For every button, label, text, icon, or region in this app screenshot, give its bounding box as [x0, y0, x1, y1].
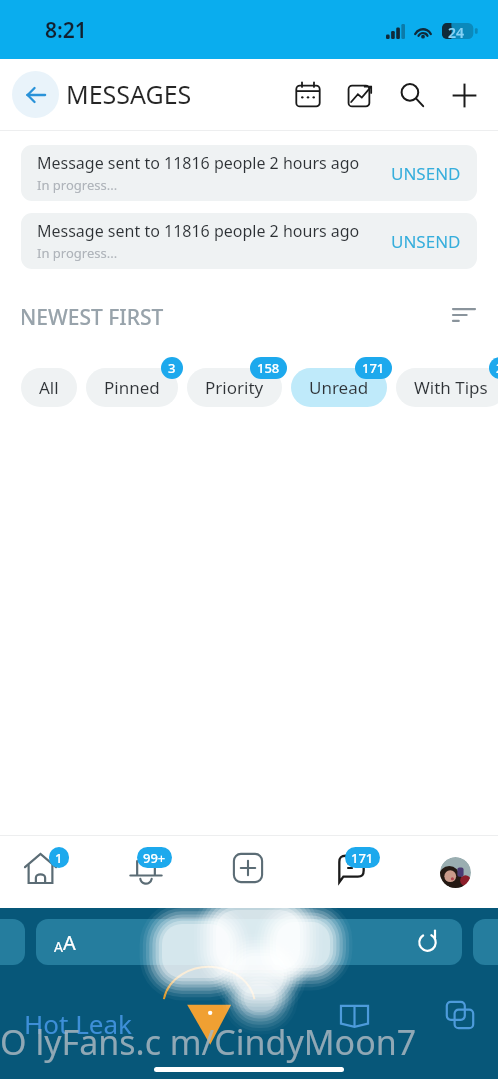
button[interactable]: Sort: [446, 303, 482, 327]
staticText: 171: [351, 849, 374, 867]
staticText: With Tips: [414, 376, 488, 399]
button[interactable]: All: [21, 368, 77, 407]
staticText: In progress...: [37, 244, 118, 262]
staticText: O lyFans.c m/CindyMoon7: [0, 1019, 417, 1065]
button[interactable]: Home: [0, 836, 99, 908]
staticText: 99+: [143, 849, 166, 867]
button[interactable]: UNSEND: [391, 230, 461, 253]
staticText: A: [63, 929, 76, 956]
button[interactable]: UNSEND: [391, 162, 461, 185]
button[interactable]: Bookmarks: [333, 994, 375, 1036]
staticText: 24: [448, 23, 465, 39]
staticText: Message sent to 11816 people 2 hours ago: [37, 220, 360, 242]
button[interactable]: Messages: [298, 836, 398, 908]
staticText: Hot Leak: [24, 1006, 132, 1041]
button[interactable]: New message: [442, 73, 486, 117]
button[interactable]: Notifications: [99, 836, 198, 908]
staticText: 3: [168, 359, 176, 377]
button[interactable]: With Tips: [396, 368, 498, 407]
staticText: MESSAGES: [66, 77, 192, 111]
staticText: A: [54, 937, 63, 956]
button[interactable]: Unread: [291, 368, 387, 407]
button[interactable]: Message sent to 11816 people 2 hours ago: [21, 213, 477, 269]
staticText: 171: [362, 359, 385, 377]
button[interactable]: A: [36, 919, 462, 965]
staticText: In progress...: [37, 176, 118, 194]
staticText: Unread: [309, 376, 369, 399]
button[interactable]: Search: [390, 73, 434, 117]
staticText: 1: [55, 849, 63, 867]
button[interactable]: Insights: [338, 73, 382, 117]
button[interactable]: Profile: [440, 857, 471, 888]
button[interactable]: NEWEST FIRST: [20, 303, 164, 327]
staticText: 2: [496, 359, 498, 377]
button[interactable]: Pinned: [86, 368, 178, 407]
staticText: All: [39, 376, 59, 399]
button[interactable]: Calendar: [286, 73, 330, 117]
button[interactable]: Back: [12, 71, 59, 118]
button[interactable]: Message sent to 11816 people 2 hours ago: [21, 145, 477, 201]
button[interactable]: Tab overview: [439, 994, 481, 1036]
button[interactable]: Tabs: [473, 919, 498, 965]
staticText: Message sent to 11816 people 2 hours ago: [37, 152, 360, 174]
button[interactable]: Create: [198, 836, 298, 908]
button[interactable]: Back: [0, 919, 25, 965]
button[interactable]: Priority: [187, 368, 282, 407]
staticText: 158: [257, 359, 280, 377]
staticText: 8:21: [45, 16, 87, 45]
staticText: Pinned: [104, 376, 160, 399]
staticText: Priority: [205, 376, 264, 399]
